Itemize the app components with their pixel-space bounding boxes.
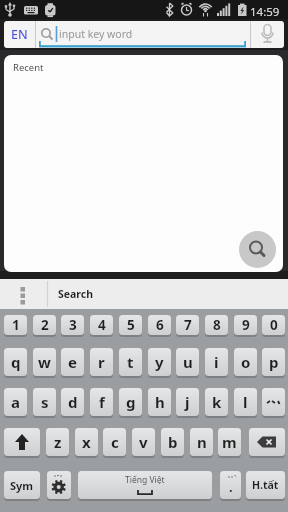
button[interactable] bbox=[262, 388, 285, 416]
button[interactable]: o bbox=[234, 348, 257, 376]
staticText: n bbox=[197, 432, 207, 452]
staticText: b bbox=[168, 432, 178, 452]
button[interactable]: q bbox=[4, 348, 27, 376]
staticText: w bbox=[38, 352, 51, 372]
button[interactable]: f bbox=[90, 388, 113, 416]
button[interactable]: k bbox=[205, 388, 228, 416]
staticText: t bbox=[127, 352, 134, 372]
button[interactable]: h bbox=[148, 388, 171, 416]
staticText: x bbox=[82, 432, 91, 452]
staticText: e bbox=[68, 352, 77, 372]
button[interactable] bbox=[251, 21, 284, 48]
button[interactable] bbox=[249, 428, 285, 456]
button[interactable]: Sym bbox=[4, 471, 40, 499]
button[interactable]: 6 bbox=[148, 315, 171, 335]
staticText: H.tất bbox=[252, 478, 279, 492]
staticText: k bbox=[212, 392, 222, 412]
button[interactable]: y bbox=[148, 348, 171, 376]
button[interactable]: g bbox=[119, 388, 142, 416]
staticText: Sym bbox=[10, 478, 34, 493]
button[interactable]: l bbox=[234, 388, 257, 416]
button[interactable]: t bbox=[119, 348, 142, 376]
button[interactable]: r bbox=[90, 348, 113, 376]
staticText: i bbox=[214, 352, 219, 372]
staticText: f bbox=[99, 392, 105, 412]
staticText: p bbox=[269, 352, 279, 372]
button[interactable]: 2 bbox=[33, 315, 56, 335]
button[interactable]: 1 bbox=[4, 315, 27, 335]
staticText: j bbox=[185, 392, 190, 412]
staticText: EN bbox=[11, 26, 28, 43]
staticText: Search bbox=[58, 287, 94, 301]
staticText: input key word bbox=[59, 27, 133, 41]
button[interactable] bbox=[239, 231, 276, 268]
staticText: 9 bbox=[242, 316, 250, 334]
staticText: v bbox=[139, 432, 148, 452]
staticText: 14:59 bbox=[250, 4, 280, 20]
button[interactable]: Tiếng Việt bbox=[78, 471, 212, 499]
staticText: y bbox=[155, 352, 164, 372]
button[interactable]: a bbox=[4, 388, 27, 416]
staticText: 1 bbox=[12, 316, 20, 334]
button[interactable]: Search bbox=[48, 279, 288, 309]
button[interactable]: EN bbox=[4, 21, 35, 48]
staticText: g bbox=[126, 392, 136, 412]
staticText: u bbox=[183, 352, 193, 372]
staticText: 2 bbox=[41, 316, 49, 334]
button[interactable]: 8 bbox=[205, 315, 228, 335]
button[interactable]: x bbox=[75, 428, 98, 456]
staticText: d bbox=[68, 392, 78, 412]
button[interactable]: v bbox=[132, 428, 155, 456]
staticText: 7 bbox=[184, 316, 192, 334]
staticText: z bbox=[54, 432, 62, 452]
staticText: 5 bbox=[127, 316, 135, 334]
staticText: r bbox=[98, 352, 105, 372]
staticText: h bbox=[155, 392, 165, 412]
button[interactable]: H.tất bbox=[246, 471, 285, 499]
staticText: s bbox=[41, 392, 49, 412]
staticText: Tiếng Việt bbox=[125, 474, 165, 486]
staticText: l bbox=[243, 392, 248, 412]
staticText: . bbox=[229, 478, 233, 496]
button[interactable]: 3 bbox=[61, 315, 84, 335]
button[interactable]: n bbox=[190, 428, 213, 456]
button[interactable]: d bbox=[61, 388, 84, 416]
button[interactable] bbox=[47, 471, 71, 499]
button[interactable]: z bbox=[46, 428, 69, 456]
button[interactable] bbox=[4, 428, 40, 456]
staticText: 6 bbox=[156, 316, 164, 334]
button[interactable]: p bbox=[262, 348, 285, 376]
button[interactable]: 4 bbox=[90, 315, 113, 335]
staticText: 8 bbox=[213, 316, 221, 334]
button[interactable]: c bbox=[103, 428, 126, 456]
button[interactable]: s bbox=[33, 388, 56, 416]
staticText: a bbox=[11, 392, 20, 412]
button[interactable]: e bbox=[61, 348, 84, 376]
staticText: 0 bbox=[270, 316, 278, 334]
button[interactable]: w bbox=[33, 348, 56, 376]
staticText: 4 bbox=[98, 316, 106, 334]
staticText: m bbox=[222, 432, 237, 452]
button[interactable]: 9 bbox=[234, 315, 257, 335]
button[interactable]: 5 bbox=[119, 315, 142, 335]
button[interactable]: 7 bbox=[176, 315, 199, 335]
button[interactable]: m bbox=[218, 428, 241, 456]
button[interactable]: i bbox=[205, 348, 228, 376]
button[interactable]: input key word bbox=[36, 21, 249, 48]
staticText: c bbox=[111, 432, 119, 452]
button[interactable]: 0 bbox=[262, 315, 285, 335]
staticText: q bbox=[11, 352, 21, 372]
button[interactable]: j bbox=[176, 388, 199, 416]
button[interactable]: u bbox=[176, 348, 199, 376]
staticText: Recent bbox=[13, 61, 44, 74]
button[interactable]: b bbox=[161, 428, 184, 456]
button[interactable]: . bbox=[220, 471, 241, 499]
staticText: 3 bbox=[69, 316, 77, 334]
staticText: o bbox=[241, 352, 251, 372]
